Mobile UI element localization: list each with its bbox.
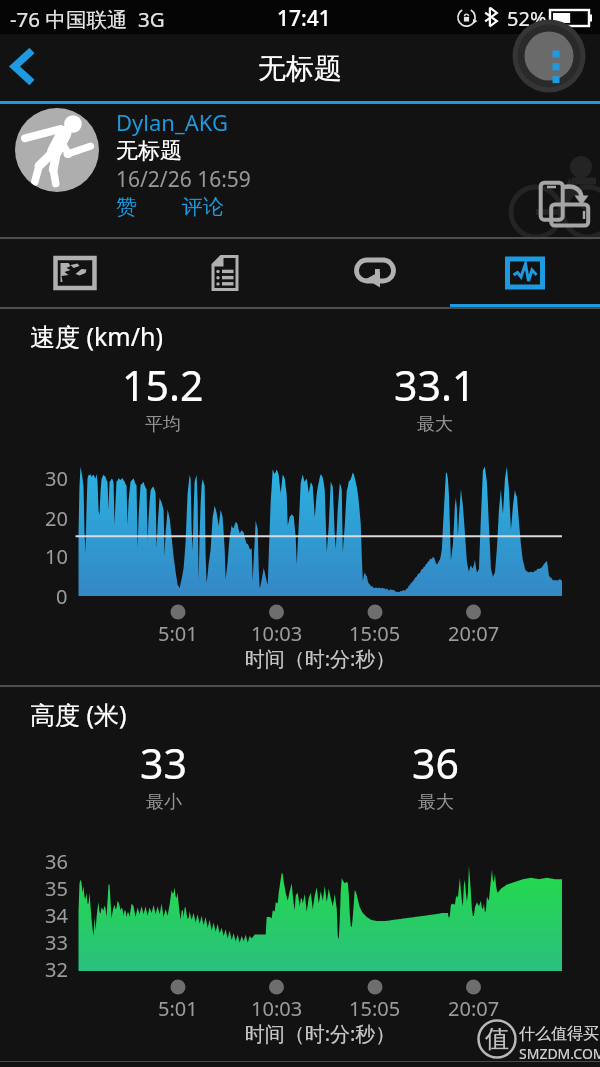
button[interactable]: Map [0,239,150,308]
staticText: 20:07 [448,620,500,647]
staticText: 时间（时:分:秒） [120,1020,520,1047]
staticText: 无标题 [258,51,342,86]
staticText: 5:01 [158,995,198,1022]
button[interactable]: Avatar [15,108,99,192]
staticText: 20 [45,505,68,532]
staticText: 平均 [145,413,181,436]
button[interactable]: Back [0,40,50,96]
staticText: 36 [45,848,68,875]
staticText: 无标题 [116,137,182,165]
staticText: 33 [140,735,187,791]
staticText: 什么值得买 [519,1024,599,1044]
staticText: 36 [412,735,459,791]
staticText: 20:07 [448,995,500,1022]
staticText: 高度 (米) [30,697,127,731]
staticText: 最小 [146,791,182,814]
button[interactable]: Rotate screen [508,156,600,237]
staticText: 最大 [418,791,454,814]
staticText: 32 [45,956,68,983]
staticText: 10:03 [251,995,303,1022]
button[interactable]: Laps [300,239,450,308]
button[interactable]: Charts [450,239,600,308]
button[interactable]: Details [150,239,300,308]
button[interactable]: 评论 [182,194,224,220]
staticText: SMZDM.COM [519,1044,600,1063]
staticText: 33.1 [394,357,476,413]
staticText: 16/2/26 16:59 [116,165,251,194]
staticText: 35 [45,875,68,902]
staticText: 15:05 [349,620,401,647]
button[interactable]: 赞 [116,194,137,220]
staticText: 15:05 [349,995,401,1022]
staticText: Dylan_AKG [116,107,228,137]
staticText: 52% [507,5,547,32]
staticText: 5:01 [158,620,198,647]
staticText: 值 [485,1024,509,1054]
staticText: 最大 [417,413,453,436]
staticText: 时间（时:分:秒） [120,645,520,672]
staticText: -76 中国联通 3G [10,5,165,33]
staticText: 速度 (km/h) [30,319,163,353]
button[interactable]: More options [500,16,600,84]
staticText: 10:03 [251,620,303,647]
staticText: 33 [45,929,68,956]
staticText: 17:41 [277,4,331,33]
staticText: 34 [45,902,68,929]
staticText: 10 [45,543,68,570]
staticText: 15.2 [122,357,204,413]
staticText: 0 [56,583,68,610]
staticText: 30 [45,465,68,492]
